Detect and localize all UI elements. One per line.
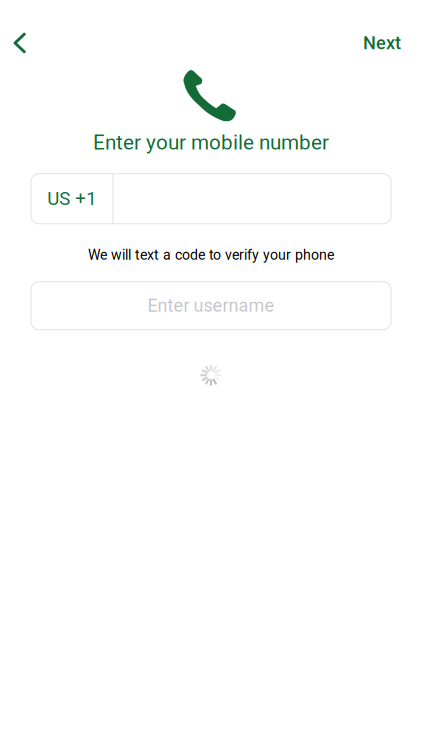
staticText: Next [363, 32, 401, 54]
staticText: Enter username [147, 295, 274, 316]
staticText: We will text a code to verify your phone [88, 246, 334, 263]
staticText: US +1 [47, 188, 96, 210]
button[interactable]: Back [0, 23, 43, 63]
button[interactable]: Next [363, 23, 422, 63]
staticText: Enter your mobile number [93, 130, 329, 155]
